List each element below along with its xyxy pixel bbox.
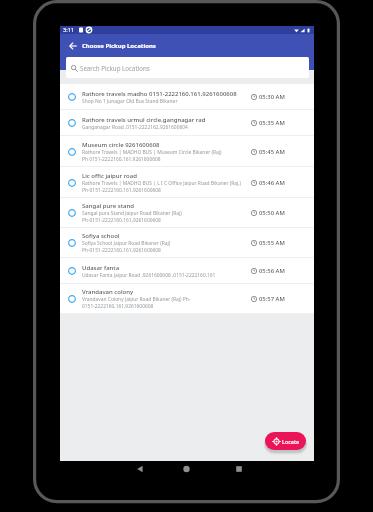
staticText: Sangal pure stand	[82, 202, 134, 210]
staticText: Ph-0151-2222160,161,9261600608	[82, 187, 161, 194]
staticText: Search Pickup Locations	[80, 64, 150, 72]
staticText: 05:57 AM	[259, 295, 285, 303]
staticText: Rathore Travels | MADHO BUS | L I C Offi…	[82, 180, 242, 187]
staticText: Choose Pickup Locations	[82, 42, 156, 50]
staticText: Rathore travels madho 0151-2222160,161,9…	[82, 90, 237, 98]
staticText: Museum circle 9261600608	[82, 141, 160, 149]
staticText: Udasar Fanta Jaipur Road ,9261600608 ,01…	[82, 272, 216, 279]
staticText: 3:11	[63, 26, 75, 34]
staticText: 0151-2222160,161,9261600608	[82, 303, 154, 310]
staticText: 05:50 AM	[259, 209, 285, 217]
staticText: 05:55 AM	[259, 239, 285, 247]
button[interactable]: Locate	[265, 432, 306, 450]
button[interactable]: Lic offic jaipur road	[60, 167, 314, 198]
staticText: Sofiya School Jaipur Road Bikaner (Raj)	[82, 240, 171, 247]
staticText: Vrandavan colony	[82, 288, 134, 296]
staticText: 05:30 AM	[259, 93, 285, 101]
staticText: 05:35 AM	[259, 119, 285, 127]
staticText: Sofiya school	[82, 232, 120, 240]
button[interactable]: Rathore travels urmul circle,gangnagar r…	[60, 110, 314, 136]
button[interactable]: Search Pickup Locations	[66, 57, 309, 78]
staticText: Locate	[282, 438, 300, 445]
staticText: Ph-0151-2222160,161,9261600608	[82, 217, 161, 224]
staticText: Ph 0151-2222160,161,9261600608	[82, 156, 161, 163]
staticText: Rathore travels urmul circle,gangnagar r…	[82, 116, 206, 124]
staticText: 05:45 AM	[259, 148, 285, 156]
staticText: Vrandavan Colony Jaipur Road Bikaner (Ra…	[82, 296, 191, 303]
button[interactable]: Museum circle 9261600608	[60, 136, 314, 167]
button[interactable]: Rathore travels madho 0151-2222160,161,9…	[60, 84, 314, 110]
staticText: Ganganagar Road ,0151-2222162,9261600604	[82, 124, 188, 131]
staticText: Lic offic jaipur road	[82, 172, 137, 180]
button[interactable]: Sofiya school	[60, 228, 314, 258]
staticText: Rathore Travels | MADHO BUS | Museum Cir…	[82, 149, 222, 156]
staticText: Ph-0151-2222160,161,9261600608	[82, 247, 161, 254]
staticText: Sangal pura Stand Jaipur Road Bikaner (R…	[82, 210, 182, 217]
button[interactable]: Sangal pure stand	[60, 198, 314, 228]
button[interactable]: Vrandavan colony	[60, 284, 314, 314]
staticText: 05:46 AM	[259, 179, 285, 187]
button[interactable]: Back	[67, 40, 79, 52]
button[interactable]: Udasar fanta	[60, 258, 314, 284]
staticText: Shop No 1 Junagar Old Bus Stand Bikaner	[82, 98, 178, 105]
staticText: Udasar fanta	[82, 264, 120, 272]
staticText: 05:56 AM	[259, 267, 285, 275]
